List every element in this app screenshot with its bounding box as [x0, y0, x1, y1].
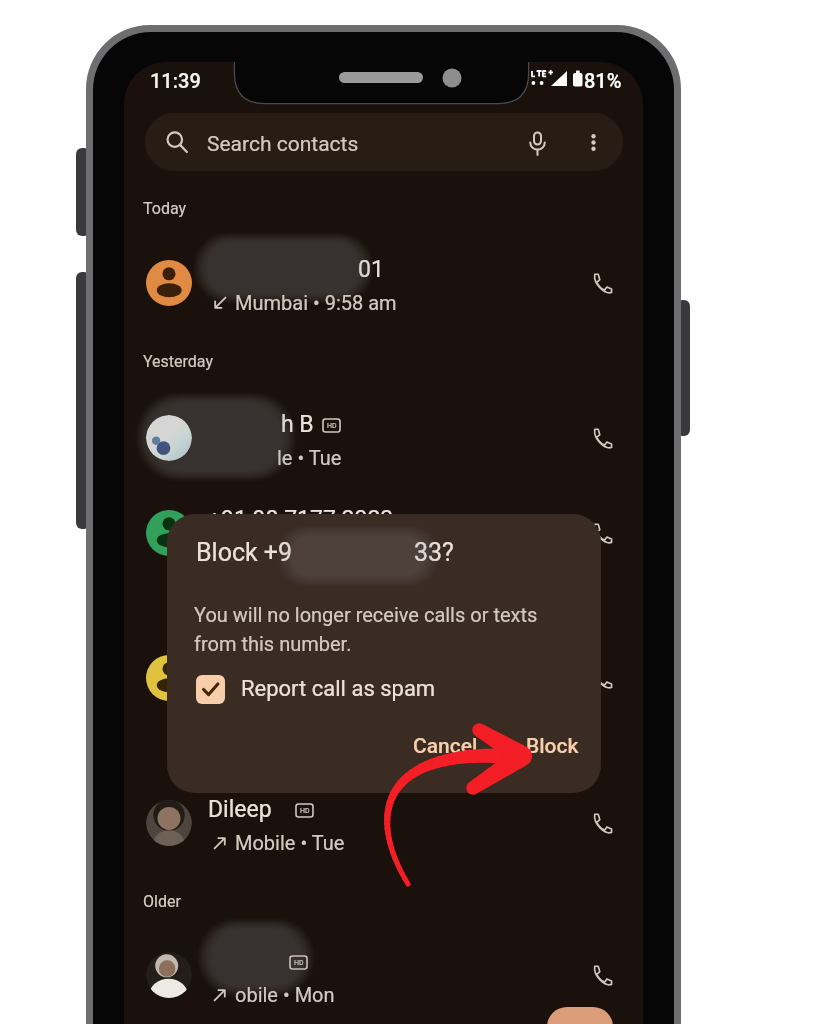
button[interactable]: Search contacts	[145, 113, 623, 171]
staticText: 81%	[584, 69, 622, 92]
button[interactable]: Call back	[577, 259, 623, 305]
button[interactable]	[124, 237, 643, 329]
staticText: HD	[327, 422, 337, 430]
button[interactable]: Call back	[577, 799, 623, 845]
button[interactable]: Report call as spam	[190, 669, 414, 709]
staticText: You will no longer receive calls or text…	[194, 603, 538, 656]
staticText: h B	[281, 411, 314, 438]
staticText: Older	[143, 892, 181, 911]
staticText: Mobile • Tue	[235, 686, 345, 709]
staticText: Mobile • Tue	[235, 831, 345, 854]
button[interactable]: Call back	[577, 414, 623, 460]
button[interactable]: Call back	[577, 654, 623, 700]
button[interactable]	[124, 777, 643, 869]
staticText: Cancel	[413, 734, 478, 759]
staticText: 33?	[414, 538, 454, 567]
staticText: Today	[143, 199, 187, 218]
button[interactable]: More options	[573, 122, 613, 162]
staticText: +91 98 7177 2323	[208, 506, 394, 533]
staticText: obile • Mon	[235, 983, 335, 1006]
staticText: Mumbai • 9:58 am	[235, 291, 397, 314]
button[interactable]: Cancel	[397, 725, 494, 767]
staticText: Block +9	[196, 538, 293, 567]
staticText: 11:39	[150, 69, 201, 92]
staticText: Search contacts	[207, 132, 359, 157]
staticText: Block	[526, 734, 579, 759]
button[interactable]	[124, 392, 643, 484]
button[interactable]	[124, 487, 643, 579]
staticText: Yesterday	[143, 352, 214, 371]
staticText: 01	[358, 256, 384, 283]
staticText: Amit	[208, 651, 257, 678]
staticText: Dileep	[208, 796, 272, 823]
staticText: Mobile • Tue	[235, 541, 345, 564]
button[interactable]: Dial pad	[547, 1007, 613, 1024]
button[interactable]	[124, 929, 643, 1021]
button[interactable]	[124, 632, 643, 724]
staticText: HD	[300, 807, 310, 815]
staticText: HD	[294, 959, 304, 967]
staticText: le • Tue	[277, 446, 342, 469]
button[interactable]: Call back	[577, 509, 623, 555]
staticText: Report call as spam	[241, 676, 436, 702]
button[interactable]: Block	[510, 725, 595, 767]
button[interactable]: Call back	[577, 951, 623, 997]
button[interactable]: Voice search	[517, 123, 557, 163]
